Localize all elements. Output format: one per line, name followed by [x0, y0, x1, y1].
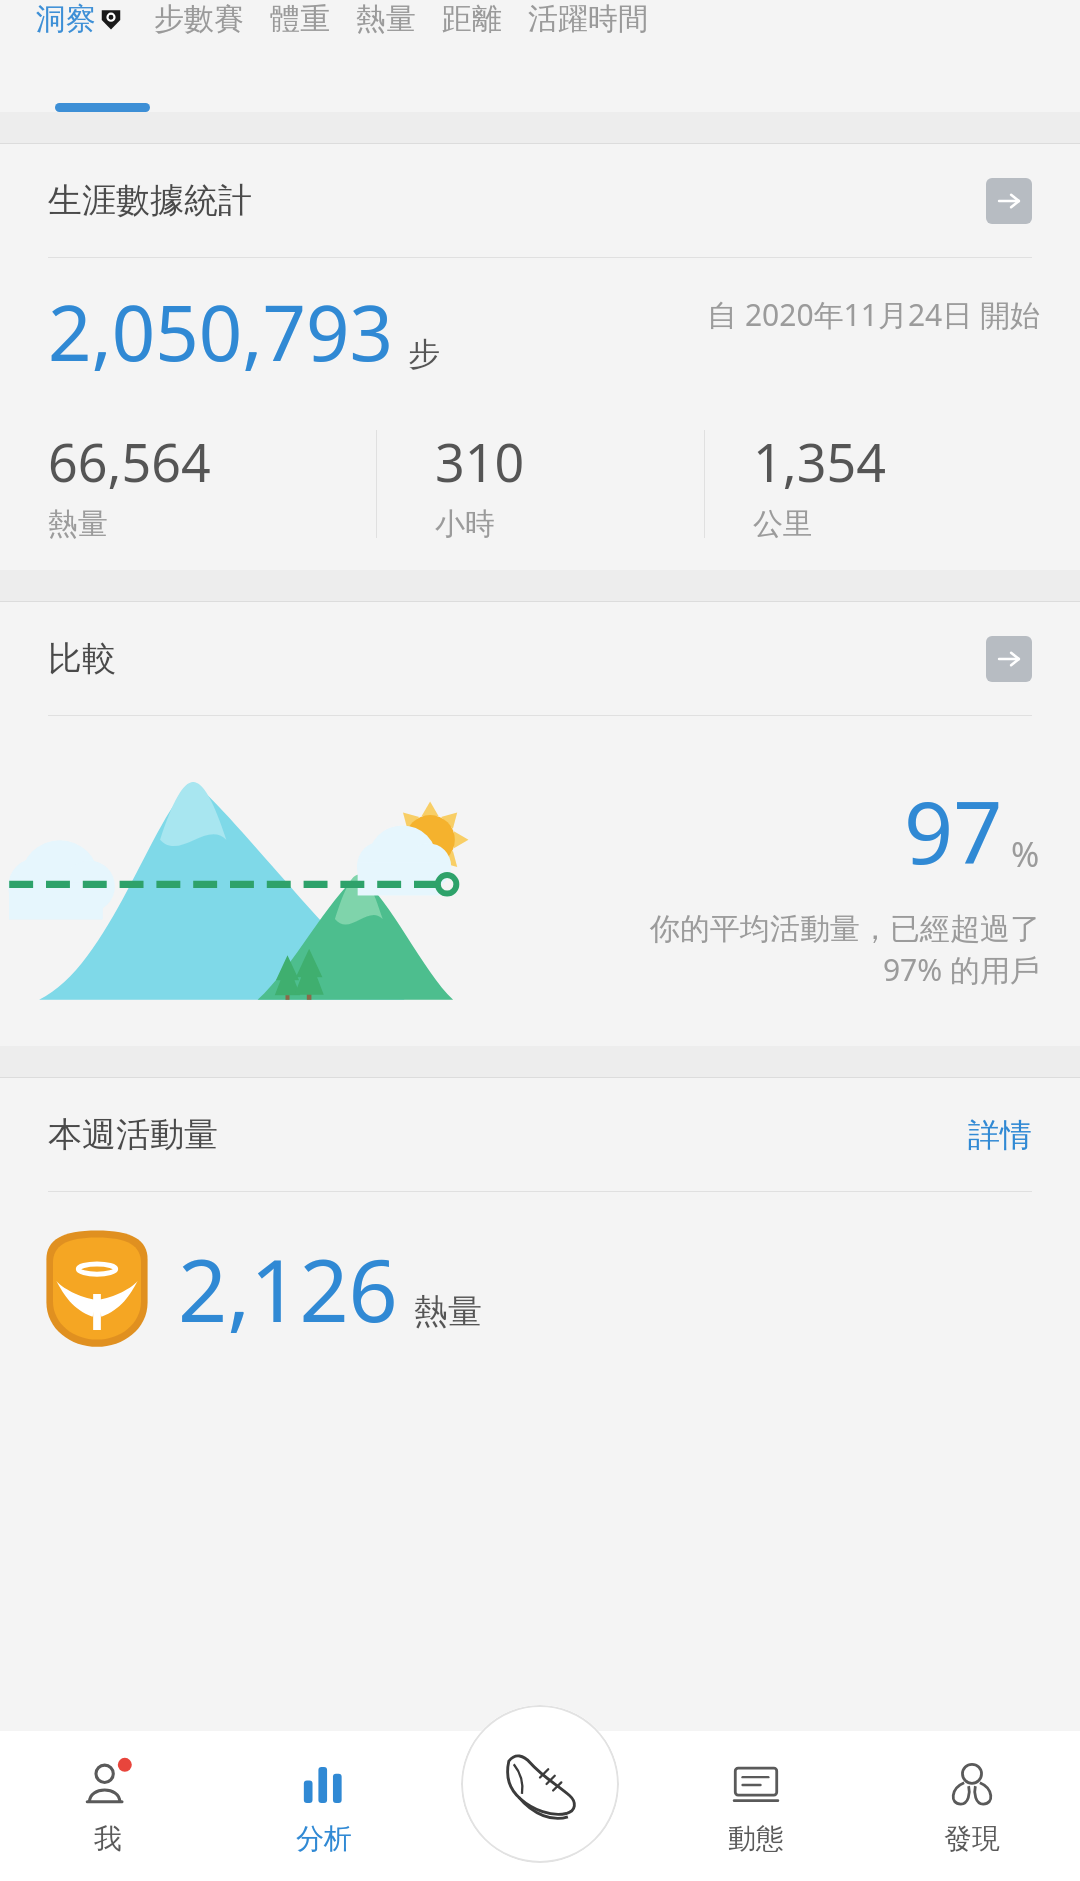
staticText: 66,564	[48, 426, 211, 497]
button[interactable]: 洞察	[30, 0, 128, 38]
staticText: 熱量	[414, 1290, 482, 1333]
staticText: 發現	[944, 1821, 1000, 1856]
button[interactable]: 動態	[648, 1731, 864, 1881]
button[interactable]: Open details	[986, 178, 1032, 224]
staticText: 體重	[270, 0, 330, 38]
staticText: 你的平均活動量，已經超過了 97% 的用戶	[640, 907, 1040, 990]
button[interactable]: 活躍時間	[528, 0, 648, 38]
staticText: 小時	[435, 505, 495, 543]
button[interactable]: Open details	[986, 636, 1032, 682]
staticText: 310	[435, 426, 525, 497]
button[interactable]: 距離	[442, 0, 502, 38]
button[interactable]: 詳情	[968, 1115, 1032, 1155]
staticText: 2,126	[178, 1230, 398, 1347]
button[interactable]: 體重	[270, 0, 330, 38]
staticText: 我	[94, 1821, 122, 1856]
button[interactable]: 步數賽	[154, 0, 244, 38]
staticText: 洞察	[36, 0, 96, 38]
staticText: 本週活動量	[48, 1113, 218, 1156]
staticText: 熱量	[356, 0, 416, 38]
staticText: 公里	[753, 505, 813, 543]
staticText: 1,354	[753, 426, 886, 497]
button[interactable]: 熱量	[356, 0, 416, 38]
staticText: 距離	[442, 0, 502, 38]
button[interactable]: 我	[0, 1731, 216, 1881]
staticText: 熱量	[48, 505, 108, 543]
staticText: 比較	[48, 637, 116, 680]
staticText: 生涯數據統計	[48, 179, 252, 222]
button[interactable]: 發現	[864, 1731, 1080, 1881]
staticText: %	[1011, 831, 1040, 877]
staticText: 活躍時間	[528, 0, 648, 38]
button[interactable]: 分析	[216, 1731, 432, 1881]
staticText: 自 2020年11月24日 開始	[680, 294, 1040, 335]
staticText: 步數賽	[154, 0, 244, 38]
staticText: 分析	[296, 1821, 352, 1856]
staticText: 97	[904, 772, 1003, 889]
button[interactable]: Start workout	[461, 1705, 619, 1863]
staticText: 步	[408, 334, 440, 374]
staticText: 詳情	[968, 1115, 1032, 1155]
staticText: 動態	[728, 1821, 784, 1856]
staticText: 2,050,793	[48, 280, 394, 384]
